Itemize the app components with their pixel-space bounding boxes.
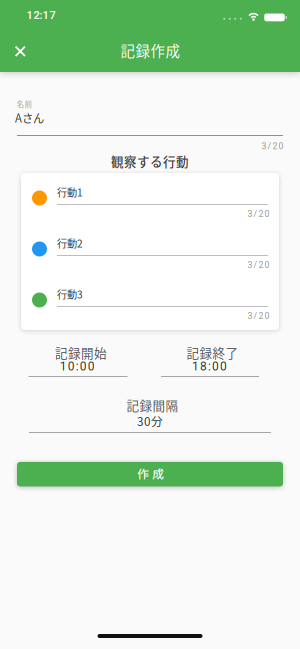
staticText: 3 / 2 0 [261, 141, 283, 151]
staticText: 1 8 : 0 0 [192, 359, 227, 373]
button[interactable]: 記録開始 [28, 345, 128, 381]
staticText: 30分 [137, 412, 163, 429]
button[interactable]: 記録間隔 [29, 396, 271, 437]
staticText: 3 / 2 0 [247, 311, 269, 321]
button[interactable]: 作 成 [17, 462, 283, 486]
staticText: 観察する行動 [111, 152, 189, 170]
button[interactable]: Close [7, 38, 33, 64]
staticText: 記録作成 [120, 40, 180, 61]
button[interactable]: 記録終了 [160, 345, 260, 381]
staticText: 3 / 2 0 [247, 209, 269, 219]
button[interactable]: 名前 [15, 104, 283, 140]
staticText: 行動1 [57, 185, 83, 199]
button[interactable]: 行動2 [57, 233, 268, 265]
staticText: 記録終了 [186, 343, 238, 361]
staticText: 記録間隔 [126, 396, 178, 414]
staticText: 行動3 [57, 287, 83, 301]
button[interactable]: 行動1 [57, 182, 268, 214]
button[interactable]: 行動3 [57, 284, 268, 316]
staticText: 1 0 : 0 0 [60, 359, 95, 373]
staticText: 記録開始 [55, 343, 107, 361]
staticText: 3 / 2 0 [247, 260, 269, 270]
staticText: 作 成 [137, 465, 164, 482]
staticText: 1 2:1 7 [26, 9, 55, 22]
staticText: 名前 [16, 98, 32, 109]
staticText: 行動2 [57, 236, 83, 250]
staticText: Aさん [15, 109, 44, 126]
